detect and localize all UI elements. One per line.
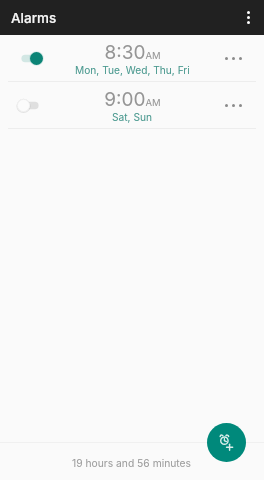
button[interactable]: Turn alarm on [17,99,43,112]
staticText: 9:00AM [104,88,161,111]
button[interactable]: Add alarm [207,423,246,462]
button[interactable]: Turn alarm on [0,82,264,128]
button[interactable]: Turn alarm off [17,52,43,65]
button[interactable]: Turn alarm off [0,35,264,81]
staticText: Sat, Sun [112,111,152,123]
staticText: Alarms [11,10,57,26]
button[interactable]: Alarm options [203,35,264,81]
button[interactable]: Alarm options [203,82,264,128]
staticText: 19 hours and 56 minutes [72,457,192,469]
staticText: 8:30AM [104,41,161,64]
staticText: Mon, Tue, Wed, Thu, Fri [75,64,190,76]
button[interactable]: More options [232,0,264,35]
